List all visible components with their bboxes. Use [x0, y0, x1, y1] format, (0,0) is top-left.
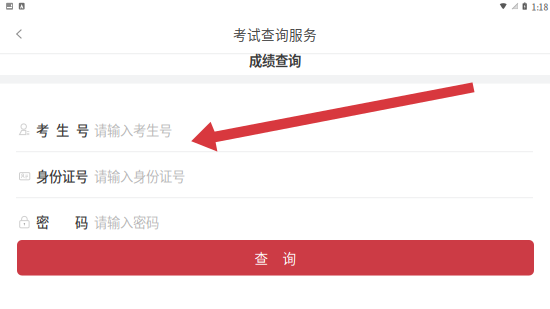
- staticText: 请输入考生号: [94, 120, 172, 139]
- button[interactable]: 查 询: [0, 243, 550, 279]
- button[interactable]: Back: [0, 19, 39, 53]
- staticText: 请输入密码: [94, 212, 159, 231]
- staticText: 密 码: [36, 212, 88, 231]
- button[interactable]: 考 生 号: [0, 106, 550, 151]
- staticText: 请输入身份证号: [94, 166, 185, 185]
- staticText: 身份证号: [36, 166, 88, 185]
- button[interactable]: 身份证号: [0, 152, 550, 197]
- staticText: 考试查询服务: [233, 24, 317, 44]
- staticText: 查 询: [254, 248, 296, 268]
- button[interactable]: 密 码: [0, 198, 550, 243]
- staticText: 1:18: [531, 1, 548, 13]
- staticText: 成绩查询: [249, 50, 301, 70]
- staticText: 考 生 号: [36, 120, 89, 139]
